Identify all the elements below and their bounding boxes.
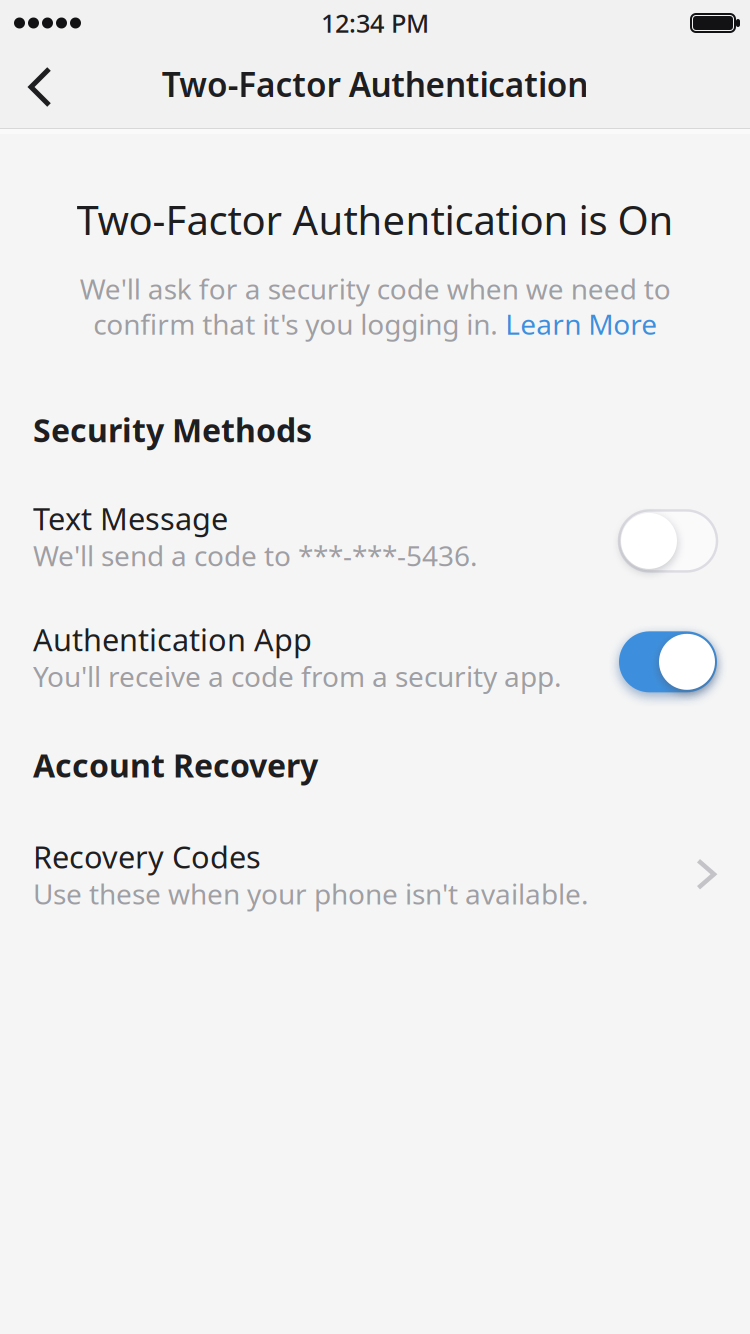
staticText: Account Recovery [33, 744, 318, 786]
toggle[interactable]: Authentication App [0, 619, 750, 695]
toggle[interactable]: Text Message [0, 498, 750, 574]
staticText: Recovery Codes [33, 836, 261, 877]
staticText: Text Message [33, 498, 228, 539]
staticText: Two-Factor Authentication is On [76, 193, 673, 246]
staticText: You'll receive a code from a security ap… [33, 658, 562, 695]
button[interactable]: Learn More [508, 311, 658, 341]
button[interactable]: Recovery Codes [0, 836, 750, 912]
button[interactable]: Back [0, 47, 78, 127]
button[interactable]: 1 [0, 619, 750, 695]
staticText: Authentication App [33, 619, 312, 660]
staticText: Security Methods [33, 408, 312, 451]
staticText: We'll ask for a security code when we ne… [79, 270, 670, 342]
staticText: Use these when your phone isn't availabl… [33, 875, 589, 912]
staticText: 12:34 PM [321, 6, 429, 40]
button[interactable]: 0 [0, 498, 750, 574]
staticText: We'll send a code to ***-***-5436. [33, 537, 478, 574]
staticText: Two-Factor Authentication [162, 62, 588, 106]
